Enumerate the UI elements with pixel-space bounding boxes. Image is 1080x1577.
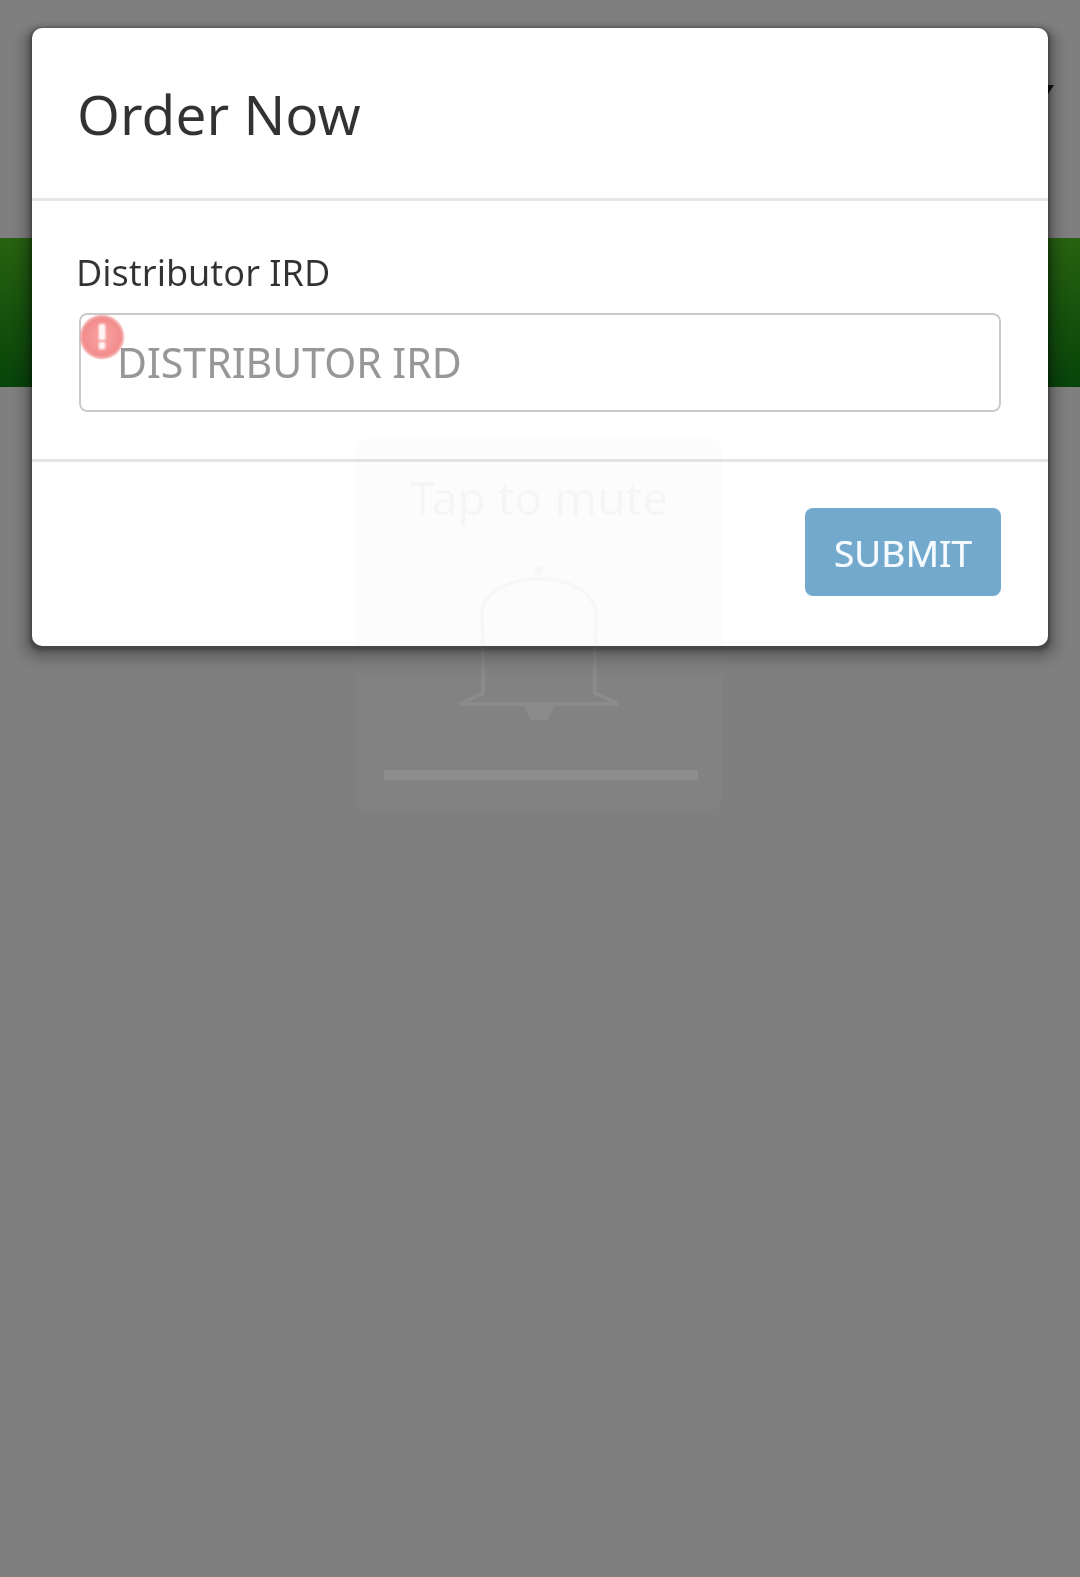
button[interactable]: Tap to mute — [356, 438, 722, 811]
button[interactable]: Show more options — [1042, 85, 1054, 94]
staticText: DISTRIBUTOR IRD — [117, 334, 462, 390]
other: Required field error — [79, 314, 125, 360]
staticText: Order Now — [77, 76, 361, 151]
staticText: SUBMIT — [834, 527, 973, 577]
button[interactable]: SUBMIT — [805, 508, 1001, 596]
staticText: Distributor IRD — [76, 248, 331, 297]
button[interactable]: DISTRIBUTOR IRD — [79, 313, 1001, 412]
